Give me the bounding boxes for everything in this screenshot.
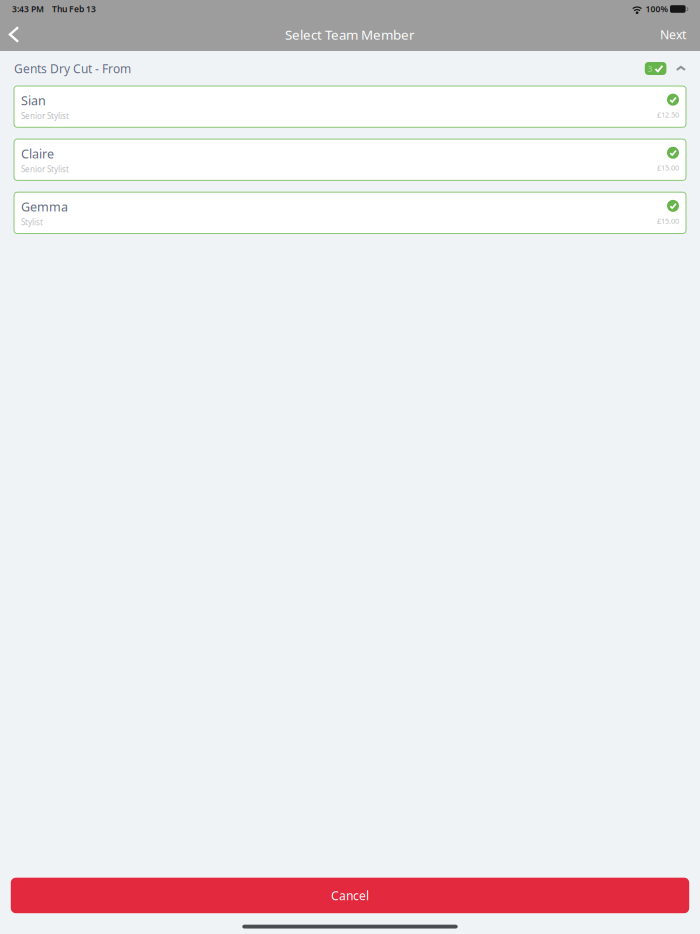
staticText: Senior Stylist (21, 164, 69, 174)
staticText: 100% (645, 3, 667, 15)
staticText: £15.00 (657, 216, 679, 226)
staticText: Cancel (331, 887, 369, 904)
staticText: Stylist (21, 217, 43, 228)
staticText: Senior Stylist (21, 110, 69, 121)
button[interactable]: Gemma (14, 192, 686, 233)
button[interactable]: Next (646, 18, 700, 51)
button[interactable]: 3 selected (645, 62, 666, 75)
staticText: Next (660, 26, 686, 43)
staticText: £15.00 (657, 163, 679, 173)
staticText: Sian (21, 92, 46, 109)
staticText: Select Team Member (285, 25, 415, 44)
button[interactable]: Back (0, 18, 33, 51)
button[interactable]: Cancel (11, 878, 689, 913)
button[interactable]: Claire (14, 139, 686, 180)
staticText: Gemma (21, 198, 68, 215)
staticText: 3 (648, 62, 653, 74)
button[interactable]: Collapse section (676, 63, 686, 74)
staticText: Gents Dry Cut - From (14, 60, 131, 77)
button[interactable]: Sian (14, 86, 686, 127)
staticText: 3:43 PM (12, 3, 44, 15)
staticText: £12.50 (657, 110, 679, 120)
staticText: Claire (21, 145, 54, 162)
staticText: Thu Feb 13 (52, 3, 96, 15)
